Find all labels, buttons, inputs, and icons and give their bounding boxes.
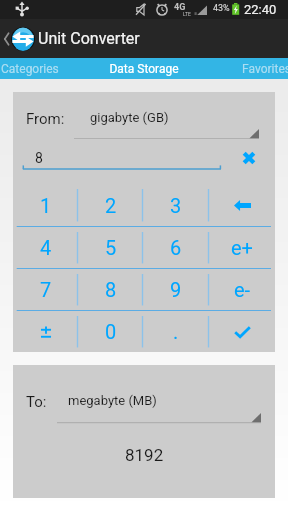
button[interactable]: e+ bbox=[209, 227, 275, 268]
button[interactable]: Backspace bbox=[209, 184, 275, 226]
staticText: 43% bbox=[213, 3, 230, 14]
staticText: 8192 bbox=[125, 445, 164, 465]
staticText: 4G bbox=[174, 2, 186, 13]
staticText: 5 bbox=[105, 236, 117, 259]
staticText: 0 bbox=[105, 320, 117, 343]
other: Navigate up bbox=[3, 30, 11, 48]
staticText: 22:40 bbox=[244, 2, 277, 17]
staticText: 7 bbox=[40, 278, 52, 301]
other: Confirm bbox=[234, 326, 251, 338]
button[interactable]: 0 bbox=[78, 311, 143, 352]
staticText: LTE bbox=[183, 11, 191, 17]
button[interactable]: 7 bbox=[13, 269, 78, 310]
staticText: gigabyte (GB) bbox=[90, 110, 169, 125]
button[interactable]: 9 bbox=[143, 269, 209, 310]
button[interactable]: Navigate up bbox=[0, 19, 145, 58]
button[interactable]: . bbox=[143, 311, 209, 352]
staticText: megabyte (MB) bbox=[68, 393, 157, 408]
button[interactable]: 4 bbox=[13, 227, 78, 268]
staticText: Favorites bbox=[199, 62, 288, 76]
staticText: 1 bbox=[40, 194, 52, 217]
staticText: 8 bbox=[35, 150, 43, 166]
button[interactable]: 3 bbox=[143, 184, 209, 226]
button[interactable]: Clear bbox=[221, 139, 275, 173]
button[interactable]: Confirm bbox=[209, 311, 275, 352]
button[interactable]: e- bbox=[209, 269, 275, 310]
button[interactable]: 5 bbox=[78, 227, 143, 268]
other: Plus minus bbox=[39, 325, 53, 339]
staticText: 8 bbox=[105, 278, 117, 301]
staticText: e+ bbox=[231, 236, 253, 259]
staticText: 4 bbox=[40, 236, 52, 259]
button[interactable]: Select source unit bbox=[13, 92, 275, 139]
staticText: 2 bbox=[105, 194, 117, 217]
staticText: e- bbox=[234, 278, 251, 301]
staticText: 9 bbox=[170, 278, 182, 301]
staticText: 3 bbox=[170, 194, 182, 217]
button[interactable]: 2 bbox=[78, 184, 143, 226]
staticText: To: bbox=[26, 393, 47, 411]
button[interactable]: 8 bbox=[78, 269, 143, 310]
staticText: Categories bbox=[1, 62, 93, 76]
staticText: Data Storage bbox=[98, 62, 190, 76]
staticText: From: bbox=[26, 110, 65, 128]
button[interactable]: Data Storage bbox=[96, 58, 192, 79]
staticText: 6 bbox=[170, 236, 182, 259]
button[interactable]: Plus minus bbox=[13, 311, 78, 352]
staticText: Unit Converter bbox=[38, 29, 140, 48]
button[interactable]: Select target unit bbox=[13, 365, 275, 423]
button[interactable]: Categories bbox=[0, 58, 96, 79]
other: Backspace bbox=[234, 200, 251, 211]
button[interactable]: 1 bbox=[13, 184, 78, 226]
staticText: . bbox=[173, 320, 179, 343]
button[interactable]: 6 bbox=[143, 227, 209, 268]
button[interactable]: Favorites bbox=[192, 58, 288, 79]
